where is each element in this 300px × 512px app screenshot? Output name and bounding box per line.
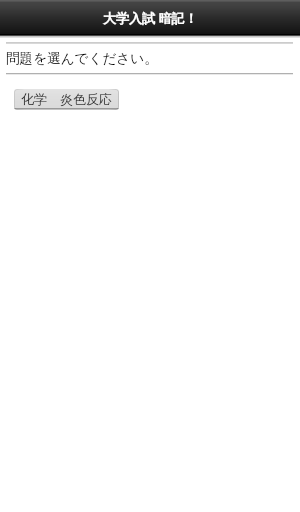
staticText: 化学 炎色反応 [21, 90, 112, 108]
staticText: 大学入試 暗記！ [103, 9, 198, 27]
staticText: 問題を選んでください。 [6, 50, 158, 67]
button[interactable]: 化学 炎色反応 [14, 89, 119, 110]
